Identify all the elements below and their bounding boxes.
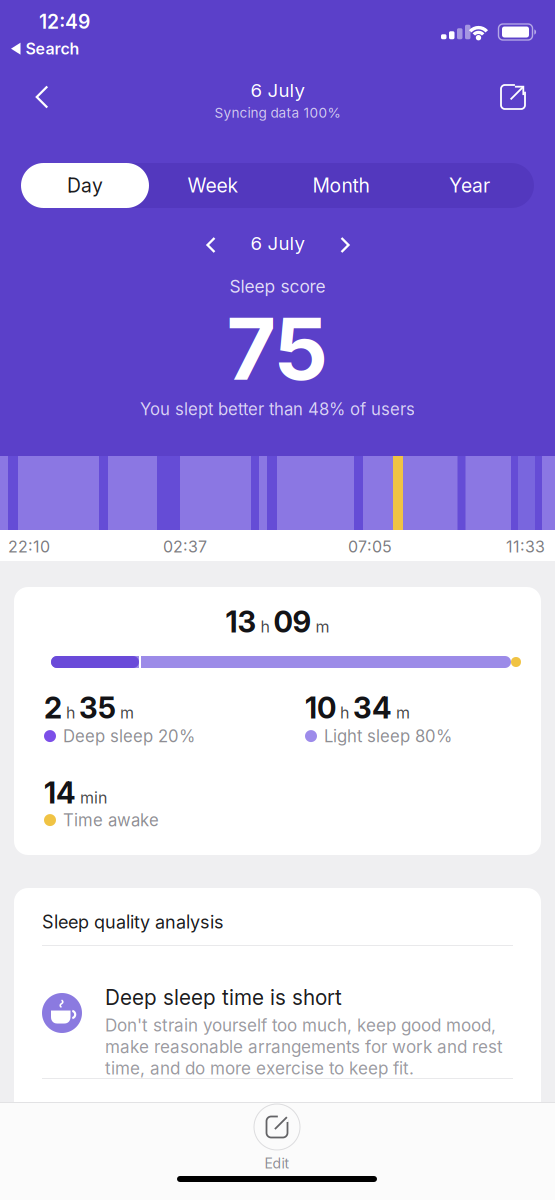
staticText: 6 July (250, 232, 304, 255)
staticText: 11:33 (506, 537, 545, 556)
staticText: Deep sleep time is short (105, 985, 342, 1010)
button[interactable]: Back (22, 77, 62, 117)
staticText: 35 (79, 690, 116, 725)
staticText: m (120, 703, 134, 722)
button[interactable]: Week (149, 163, 277, 208)
staticText: 6 July (250, 79, 304, 102)
button[interactable]: Year (405, 163, 534, 208)
staticText: 02:37 (163, 537, 207, 556)
staticText: Syncing data 100% (214, 105, 340, 121)
button[interactable]: Day (21, 163, 149, 208)
staticText: Light sleep 80% (324, 726, 452, 746)
staticText: 34 (353, 690, 392, 725)
staticText: Sleep quality analysis (42, 911, 224, 933)
staticText: 07:05 (348, 537, 392, 556)
staticText: Day (67, 174, 103, 197)
button[interactable]: Previous day (196, 230, 226, 260)
staticText: min (80, 788, 107, 807)
staticText: Month (312, 174, 369, 197)
staticText: h (260, 617, 269, 636)
staticText: Don't strain yourself too much, keep goo… (105, 1015, 503, 1078)
staticText: You slept better than 48% of users (140, 399, 415, 419)
staticText: 09 (273, 604, 311, 639)
staticText: 2 (44, 690, 62, 725)
staticText: m (396, 703, 410, 722)
button[interactable]: Share (493, 77, 533, 117)
staticText: 13 (225, 604, 256, 639)
staticText: Edit (264, 1155, 289, 1172)
staticText: Search (25, 39, 79, 58)
staticText: Deep sleep 20% (63, 726, 195, 746)
staticText: 10 (305, 690, 336, 725)
staticText: Week (187, 174, 238, 197)
button[interactable]: Month (277, 163, 405, 208)
staticText: 22:10 (8, 537, 50, 556)
staticText: Sleep score (229, 276, 325, 297)
button[interactable]: Back to Search (11, 39, 79, 58)
staticText: h (340, 703, 349, 722)
staticText: Time awake (63, 810, 159, 830)
staticText: 14 (44, 775, 76, 810)
staticText: m (315, 617, 329, 636)
staticText: h (66, 703, 75, 722)
button[interactable]: Next day (330, 230, 360, 260)
button[interactable]: Edit (227, 1104, 327, 1172)
staticText: 12:49 (39, 10, 90, 33)
staticText: Year (449, 174, 490, 197)
staticText: 75 (226, 297, 328, 400)
